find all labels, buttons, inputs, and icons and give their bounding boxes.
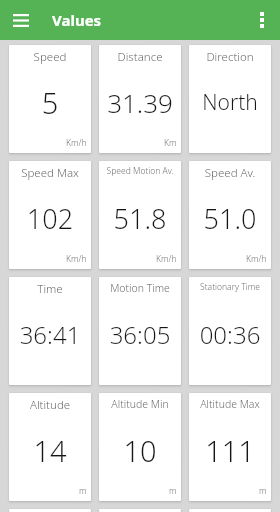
staticText: Direction [191,49,269,65]
staticText: Values [52,10,102,30]
staticText: 5 [11,83,89,122]
staticText: 36:41 [11,318,89,351]
staticText: Speed Motion Av. [101,165,179,177]
staticText: 31.39 [101,85,179,120]
staticText: m [259,485,267,497]
staticText: 51.0 [191,200,269,237]
staticText: 14 [11,431,89,470]
staticText: 111 [191,431,269,470]
staticText: Time [11,281,89,297]
staticText: Speed Max [11,165,89,181]
staticText: North [191,88,269,117]
staticText: Altitude [11,397,89,413]
button[interactable]: Distance [99,45,181,153]
staticText: Altitude Min [101,397,179,411]
staticText: 51.8 [101,200,179,237]
staticText: Km [164,137,177,149]
button[interactable]: Speed Motion Av. [99,161,181,269]
staticText: Km/h [66,137,87,149]
button[interactable]: Altitude Min [99,393,181,501]
button[interactable]: Speed [9,45,91,153]
button[interactable]: Direction [189,45,271,153]
staticText: 102 [11,200,89,237]
button[interactable]: Speed Av. [189,161,271,269]
staticText: 36:05 [101,318,179,351]
staticText: Km/h [246,253,267,265]
staticText: m [169,485,177,497]
staticText: Stationary Time [191,281,269,293]
button[interactable]: Altitude Max [189,393,271,501]
staticText: Speed Av. [191,165,269,181]
staticText: Motion Time [101,281,179,295]
button[interactable]: Altitude [9,393,91,501]
button[interactable]: Motion Time [99,277,181,385]
staticText: 00:36 [191,318,269,351]
button[interactable]: Speed Max [9,161,91,269]
staticText: 10 [101,431,179,470]
button[interactable]: More options [246,4,278,36]
staticText: Distance [101,49,179,65]
staticText: m [79,485,87,497]
button[interactable]: Stationary Time [189,277,271,385]
staticText: Speed [11,49,89,65]
button[interactable]: Open navigation menu [5,4,37,36]
staticText: Km/h [156,253,177,265]
staticText: Altitude Max [191,397,269,411]
button[interactable]: Time [9,277,91,385]
staticText: Km/h [66,253,87,265]
